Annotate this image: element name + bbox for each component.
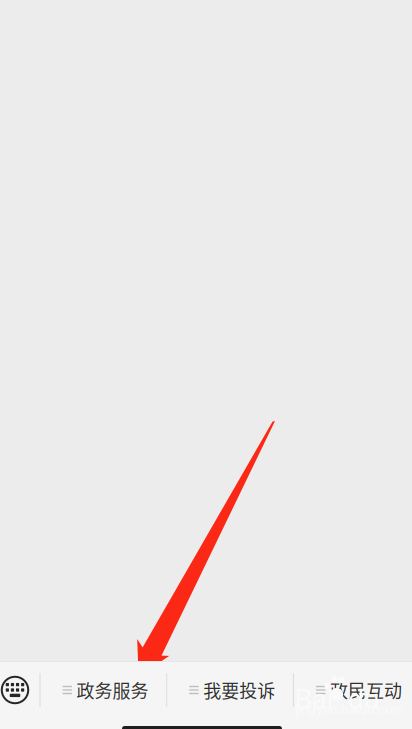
staticText: du xyxy=(348,683,379,715)
staticText: 我要投诉 xyxy=(203,677,275,703)
button[interactable]: 我要投诉 xyxy=(167,667,293,713)
button[interactable]: Keyboard xyxy=(0,667,30,713)
button[interactable]: 政务服务 xyxy=(40,667,166,713)
staticText: 政务服务 xyxy=(76,677,148,703)
staticText: 政民互动 xyxy=(330,677,402,703)
button[interactable]: 政民互动 xyxy=(294,667,412,713)
staticText: Bai xyxy=(295,683,333,715)
